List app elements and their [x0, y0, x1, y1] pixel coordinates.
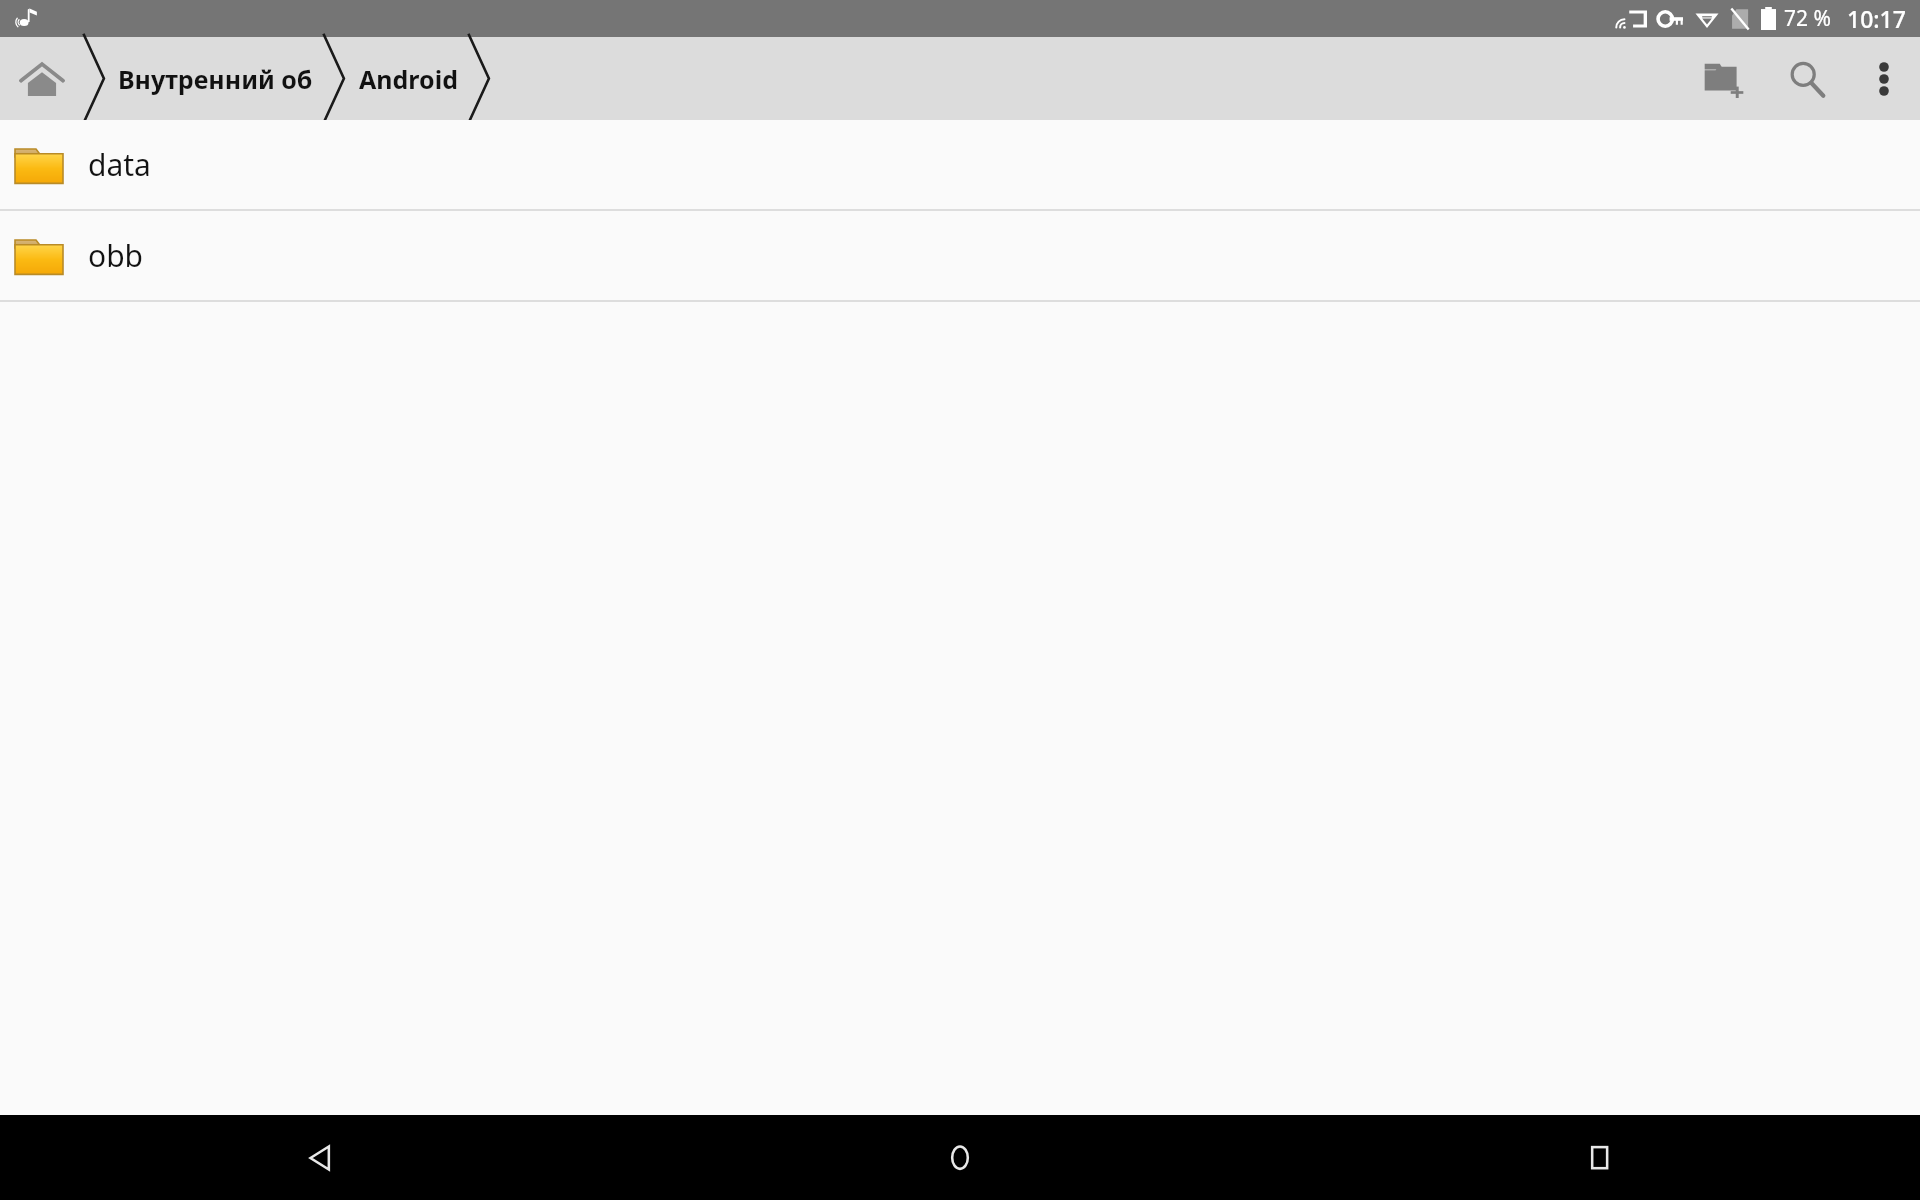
button[interactable]: More options: [1848, 37, 1920, 120]
button[interactable]: Create new folder: [1682, 37, 1765, 120]
button[interactable]: Home: [0, 37, 83, 120]
staticText: 10:17: [1847, 3, 1906, 34]
button[interactable]: Search: [1765, 37, 1848, 120]
staticText: 72 %: [1784, 4, 1831, 33]
button[interactable]: Back: [0, 1115, 640, 1200]
button[interactable]: obb: [0, 211, 1920, 300]
button[interactable]: Home: [640, 1115, 1280, 1200]
button[interactable]: Внутренний об: [118, 62, 313, 96]
staticText: data: [88, 144, 151, 185]
button[interactable]: Recent apps: [1280, 1115, 1920, 1200]
button[interactable]: Android: [359, 62, 458, 96]
staticText: obb: [88, 235, 144, 276]
button[interactable]: data: [0, 120, 1920, 209]
